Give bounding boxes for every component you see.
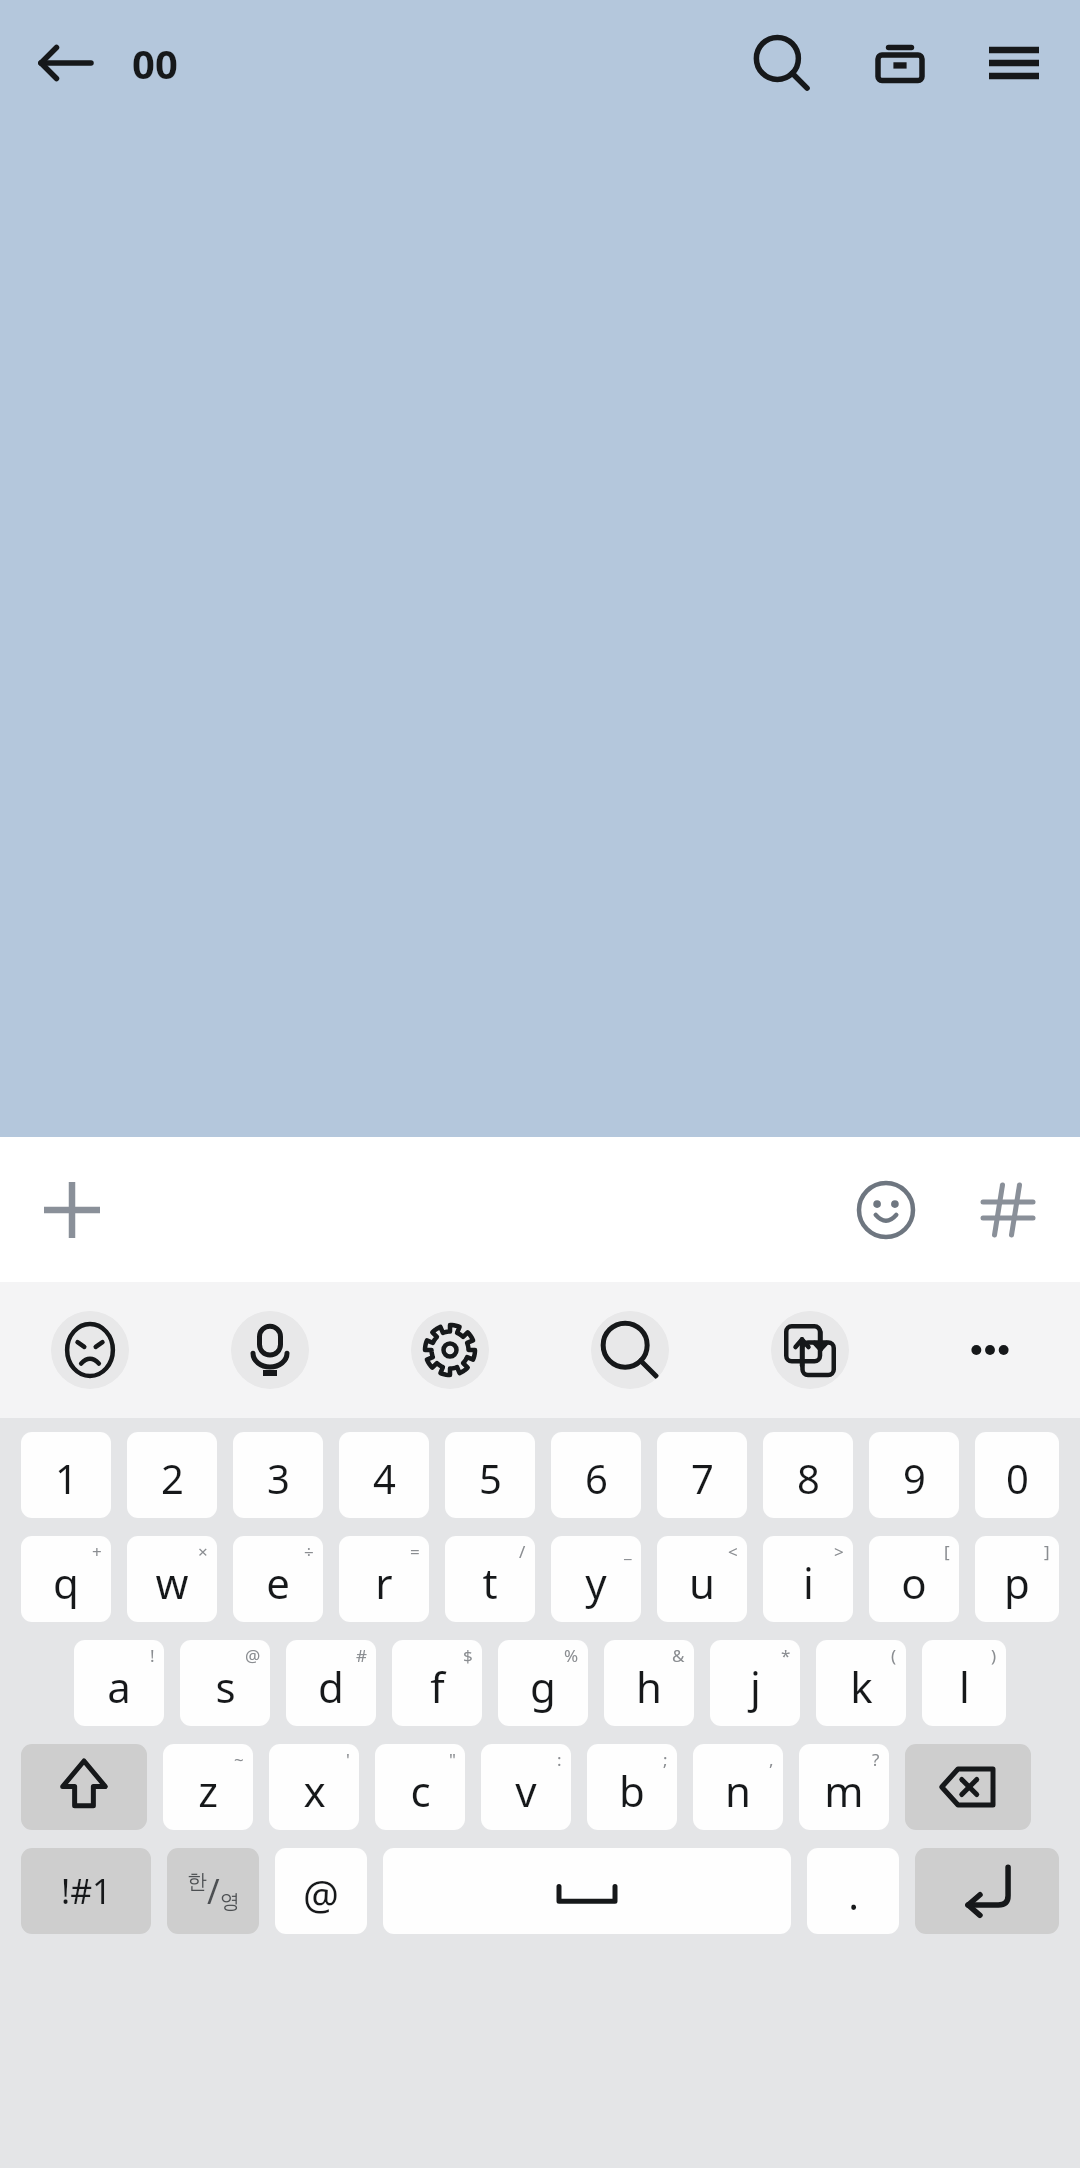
button[interactable]: 5	[445, 1432, 535, 1518]
staticText: 영	[220, 1889, 240, 1914]
button[interactable]: 1	[21, 1432, 111, 1518]
button[interactable]: q	[21, 1536, 111, 1622]
staticText: /	[519, 1540, 526, 1563]
button[interactable]: p	[975, 1536, 1059, 1622]
button[interactable]: Shift	[21, 1744, 147, 1830]
button[interactable]: Menu	[966, 15, 1062, 111]
staticText: '	[346, 1748, 350, 1771]
button[interactable]: v	[481, 1744, 571, 1830]
staticText: ~	[234, 1748, 244, 1771]
staticText: 한	[187, 1869, 207, 1894]
staticText: h	[636, 1658, 662, 1715]
staticText: ÷	[304, 1540, 314, 1563]
button[interactable]: t	[445, 1536, 535, 1622]
button[interactable]: Add tag	[960, 1162, 1056, 1258]
staticText: /	[207, 1868, 220, 1914]
button[interactable]: o	[869, 1536, 959, 1622]
staticText: (	[891, 1644, 897, 1667]
staticText: %	[564, 1644, 579, 1667]
button[interactable]: Search	[734, 15, 830, 111]
button[interactable]: r	[339, 1536, 429, 1622]
staticText: $	[463, 1644, 473, 1667]
button[interactable]: g	[498, 1640, 588, 1726]
staticText: 6	[585, 1451, 608, 1505]
button[interactable]: Backspace	[905, 1744, 1031, 1830]
button[interactable]: y	[551, 1536, 641, 1622]
button[interactable]: a	[74, 1640, 164, 1726]
button[interactable]: 7	[657, 1432, 747, 1518]
button[interactable]: s	[180, 1640, 270, 1726]
staticText: b	[619, 1762, 645, 1819]
staticText: e	[266, 1554, 290, 1611]
button[interactable]: i	[763, 1536, 853, 1622]
staticText: [	[944, 1540, 950, 1563]
button[interactable]: z	[163, 1744, 253, 1830]
button[interactable]: Space	[383, 1848, 791, 1934]
staticText: c	[410, 1762, 431, 1819]
button[interactable]: @	[275, 1848, 367, 1934]
button[interactable]: 4	[339, 1432, 429, 1518]
button[interactable]: 3	[233, 1432, 323, 1518]
button[interactable]: 9	[869, 1432, 959, 1518]
button[interactable]: n	[693, 1744, 783, 1830]
button[interactable]: u	[657, 1536, 747, 1622]
staticText: :	[557, 1748, 562, 1771]
button[interactable]: Translate	[720, 1282, 900, 1418]
staticText: y	[585, 1554, 607, 1611]
button[interactable]: e	[233, 1536, 323, 1622]
button[interactable]: Emoji	[0, 1282, 180, 1418]
staticText: 00	[132, 36, 178, 90]
button[interactable]: 한	[167, 1848, 259, 1934]
staticText: ×	[198, 1540, 208, 1563]
staticText: j	[750, 1658, 761, 1715]
staticText: u	[689, 1554, 715, 1611]
button[interactable]: Enter	[915, 1848, 1059, 1934]
staticText: o	[901, 1554, 927, 1611]
staticText: w	[155, 1554, 189, 1611]
button[interactable]: m	[799, 1744, 889, 1830]
button[interactable]: .	[807, 1848, 899, 1934]
staticText: 8	[797, 1451, 820, 1505]
button[interactable]: k	[816, 1640, 906, 1726]
button[interactable]: j	[710, 1640, 800, 1726]
button[interactable]: Back	[18, 15, 114, 111]
button[interactable]: h	[604, 1640, 694, 1726]
button[interactable]: x	[269, 1744, 359, 1830]
button[interactable]: Keyboard settings	[360, 1282, 540, 1418]
button[interactable]: 8	[763, 1432, 853, 1518]
button[interactable]: Voice input	[180, 1282, 360, 1418]
staticText: <	[728, 1540, 738, 1563]
staticText: @	[245, 1644, 261, 1667]
button[interactable]: f	[392, 1640, 482, 1726]
staticText: x	[303, 1762, 326, 1819]
staticText: )	[991, 1644, 997, 1667]
staticText: 2	[161, 1451, 184, 1505]
button[interactable]: l	[922, 1640, 1006, 1726]
staticText: k	[850, 1658, 873, 1715]
staticText: >	[834, 1540, 844, 1563]
staticText: .	[848, 1867, 859, 1921]
button[interactable]: 0	[975, 1432, 1059, 1518]
button[interactable]: Insert emoji	[838, 1162, 934, 1258]
staticText: ?	[872, 1748, 880, 1771]
staticText: ]	[1044, 1540, 1050, 1563]
staticText: "	[449, 1748, 456, 1771]
staticText: 3	[267, 1451, 290, 1505]
button[interactable]: 2	[127, 1432, 217, 1518]
button[interactable]: Archive	[852, 15, 948, 111]
staticText: _	[624, 1540, 632, 1563]
button[interactable]: !#1	[21, 1848, 151, 1934]
button[interactable]: More options	[900, 1282, 1080, 1418]
button[interactable]: Add attachment	[24, 1162, 120, 1258]
button[interactable]: Search	[540, 1282, 720, 1418]
staticText: 0	[1006, 1451, 1029, 1505]
button[interactable]: b	[587, 1744, 677, 1830]
staticText: ,	[769, 1748, 774, 1771]
button[interactable]: w	[127, 1536, 217, 1622]
staticText: 5	[479, 1451, 502, 1505]
staticText: g	[530, 1658, 556, 1715]
button[interactable]: 6	[551, 1432, 641, 1518]
staticText: d	[318, 1658, 344, 1715]
button[interactable]: c	[375, 1744, 465, 1830]
button[interactable]: d	[286, 1640, 376, 1726]
